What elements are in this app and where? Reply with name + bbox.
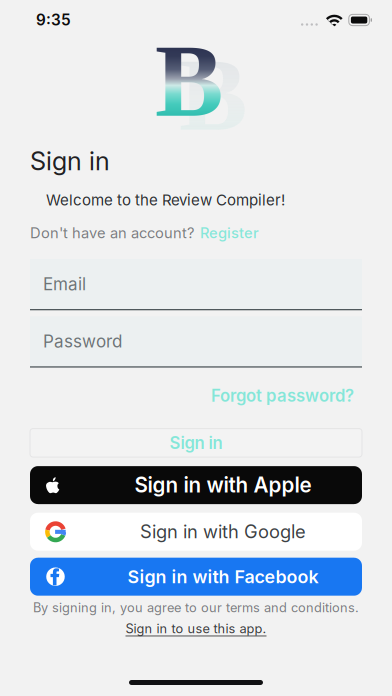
staticText: Sign in with Apple <box>134 473 311 498</box>
button[interactable]: Sign in with Facebook <box>30 558 362 596</box>
staticText: 9:35 <box>36 11 71 29</box>
staticText: Don't have an account? <box>30 224 194 242</box>
staticText: By signing in, you agree to our terms an… <box>33 600 359 615</box>
staticText: Sign in <box>169 433 222 453</box>
staticText: Forgot password? <box>211 385 354 406</box>
staticText: Password <box>43 331 122 352</box>
staticText: Register <box>200 224 259 242</box>
staticText: Welcome to the Review Compiler! <box>46 191 285 209</box>
button[interactable]: Forgot password? <box>211 385 354 406</box>
staticText: Sign in with Facebook <box>127 566 318 587</box>
staticText: Sign in to use this app. <box>125 621 266 636</box>
button[interactable]: Sign in with Apple <box>30 466 362 504</box>
button[interactable]: Sign in <box>30 429 362 457</box>
staticText: Sign in with Google <box>140 521 306 543</box>
button[interactable]: Sign in with Google <box>30 513 362 551</box>
button[interactable]: Register <box>200 224 259 242</box>
staticText: Sign in <box>30 146 110 176</box>
button[interactable]: Sign in to use this app. <box>125 622 266 636</box>
staticText: Email <box>43 274 86 294</box>
